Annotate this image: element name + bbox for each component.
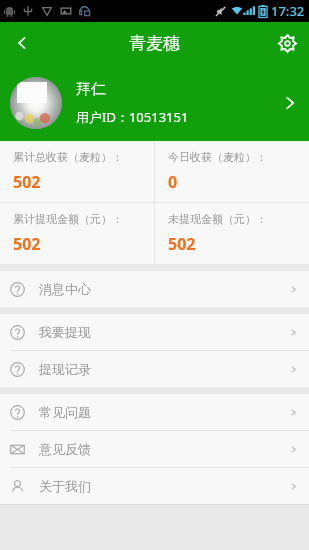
button[interactable]: 我要提现 xyxy=(0,314,309,350)
button[interactable]: 意见反馈 xyxy=(0,431,309,467)
button[interactable]: 拜仁 xyxy=(0,64,309,141)
staticText: 累计总收获（麦粒）： xyxy=(13,150,123,164)
staticText: 502 xyxy=(168,233,196,255)
button[interactable]: Back xyxy=(0,22,44,64)
button[interactable]: 消息中心 xyxy=(0,271,309,307)
staticText: 意见反馈 xyxy=(39,441,288,457)
staticText: 用户ID：10513151 xyxy=(76,108,189,126)
staticText: 17:32 xyxy=(271,2,305,20)
staticText: 0 xyxy=(168,171,178,193)
staticText: 常见问题 xyxy=(39,404,288,420)
staticText: 关于我们 xyxy=(39,478,288,494)
staticText: 累计提现金额（元）： xyxy=(13,212,123,226)
staticText: 502 xyxy=(13,233,41,255)
staticText: 我要提现 xyxy=(39,324,288,340)
staticText: 拜仁 xyxy=(76,80,106,99)
button[interactable]: 提现记录 xyxy=(0,351,309,387)
button[interactable]: Settings xyxy=(265,22,309,64)
staticText: 提现记录 xyxy=(39,361,288,377)
staticText: 消息中心 xyxy=(39,281,288,297)
staticText: 502 xyxy=(13,171,41,193)
button[interactable]: 关于我们 xyxy=(0,468,309,504)
staticText: 青麦穗 xyxy=(129,33,180,54)
staticText: 今日收获（麦粒）： xyxy=(168,150,267,164)
staticText: 未提现金额（元）： xyxy=(168,212,267,226)
button[interactable]: 常见问题 xyxy=(0,394,309,430)
